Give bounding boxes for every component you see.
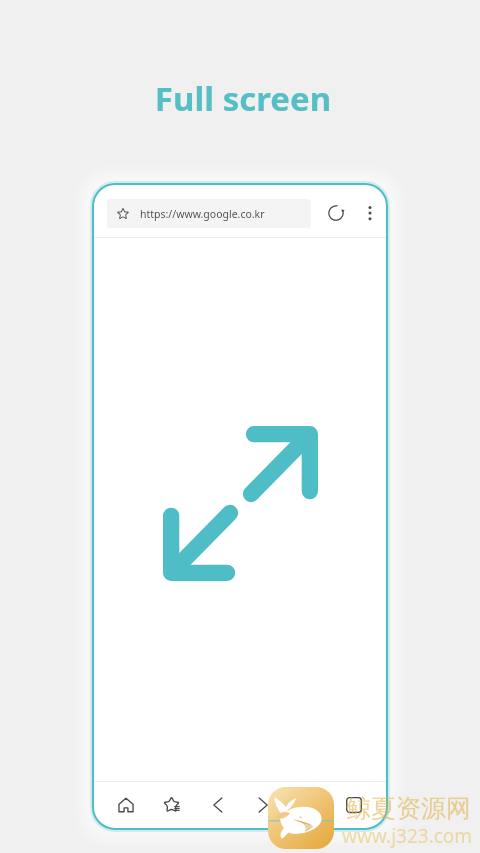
staticText: Full screen <box>3 76 480 121</box>
staticText: 鲸夏资源网 <box>346 793 471 824</box>
button[interactable]: Refresh <box>323 200 349 226</box>
button[interactable]: Home <box>110 789 142 821</box>
button[interactable]: Forward <box>247 789 279 821</box>
button[interactable]: More options <box>357 200 383 226</box>
staticText: www.j323.com <box>342 823 473 849</box>
staticText: https://www.google.co.kr <box>140 207 265 221</box>
button[interactable]: Menu <box>291 789 323 821</box>
button[interactable]: Tabs <box>338 789 370 821</box>
button[interactable]: Back <box>202 789 234 821</box>
button[interactable]: Bookmarks <box>156 789 188 821</box>
button[interactable]: https://www.google.co.kr <box>107 199 311 228</box>
